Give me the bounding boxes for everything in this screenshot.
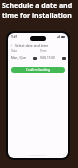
button[interactable]: Confirm booking [11, 67, 65, 73]
staticText: Confirm booking [26, 68, 51, 72]
button[interactable]: Back [9, 43, 14, 48]
staticText: Schedule a date and time for installatio… [2, 1, 73, 21]
staticText: Select date and time [15, 43, 49, 48]
staticText: Time [40, 49, 47, 53]
staticText: 9:41 [11, 35, 18, 39]
staticText: 9:00-11:00 [40, 56, 55, 60]
staticText: Mon, 3 Jun [11, 56, 27, 60]
staticText: Date [11, 49, 18, 53]
button[interactable]: Time [39, 49, 66, 60]
button[interactable]: Date [10, 49, 37, 60]
